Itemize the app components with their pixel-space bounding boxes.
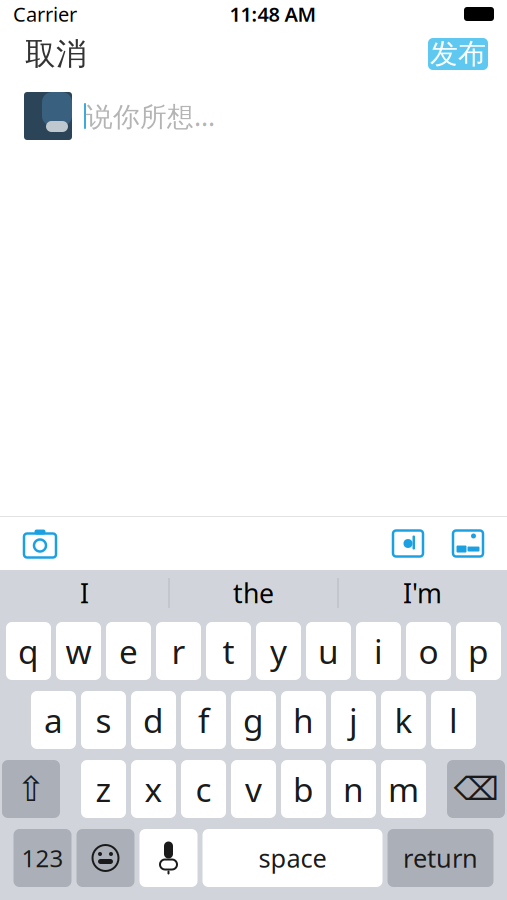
staticText: u: [318, 629, 339, 673]
staticText: 123: [21, 842, 63, 874]
button[interactable]: n: [331, 760, 376, 818]
button[interactable]: k: [381, 691, 426, 749]
button[interactable]: e: [106, 622, 151, 680]
button[interactable]: Shift: [2, 760, 60, 818]
staticText: p: [468, 629, 489, 673]
button[interactable]: w: [56, 622, 101, 680]
button[interactable]: m: [381, 760, 426, 818]
button[interactable]: t: [206, 622, 251, 680]
staticText: t: [222, 629, 234, 673]
staticText: r: [171, 629, 185, 673]
staticText: b: [293, 767, 314, 811]
button[interactable]: u: [306, 622, 351, 680]
staticText: 取消: [25, 35, 87, 73]
staticText: h: [293, 698, 314, 742]
staticText: o: [418, 629, 438, 673]
button[interactable]: g: [231, 691, 276, 749]
button[interactable]: z: [81, 760, 126, 818]
staticText: j: [349, 698, 358, 742]
button[interactable]: c: [181, 760, 226, 818]
button[interactable]: o: [406, 622, 451, 680]
button[interactable]: I: [0, 571, 168, 615]
staticText: v: [245, 767, 262, 811]
staticText: 说你所想...: [86, 98, 215, 134]
staticText: c: [195, 767, 211, 811]
button[interactable]: I'm: [338, 571, 506, 615]
staticText: m: [388, 767, 419, 811]
staticText: n: [343, 767, 364, 811]
staticText: 11:48 AM: [229, 1, 316, 27]
button[interactable]: space: [202, 829, 382, 887]
button[interactable]: l: [431, 691, 476, 749]
button[interactable]: a: [31, 691, 76, 749]
button[interactable]: x: [131, 760, 176, 818]
button[interactable]: 取消: [19, 29, 93, 79]
button[interactable]: Camera: [23, 528, 57, 558]
staticText: return: [403, 841, 478, 875]
button[interactable]: Emoji: [76, 829, 134, 887]
staticText: x: [144, 767, 162, 811]
button[interactable]: s: [81, 691, 126, 749]
button[interactable]: q: [6, 622, 51, 680]
staticText: l: [449, 698, 458, 742]
staticText: the: [233, 575, 274, 611]
button[interactable]: 发布: [428, 38, 488, 70]
button[interactable]: f: [181, 691, 226, 749]
staticText: 发布: [430, 37, 486, 71]
staticText: space: [258, 841, 326, 875]
staticText: q: [18, 629, 39, 673]
button[interactable]: p: [456, 622, 501, 680]
button[interactable]: d: [131, 691, 176, 749]
button[interactable]: v: [231, 760, 276, 818]
staticText: ⇧: [16, 769, 45, 809]
button[interactable]: y: [256, 622, 301, 680]
button[interactable]: Delete: [447, 760, 505, 818]
button[interactable]: return: [387, 829, 493, 887]
staticText: i: [374, 629, 383, 673]
button[interactable]: j: [331, 691, 376, 749]
staticText: ⌫: [453, 771, 498, 807]
staticText: e: [119, 629, 138, 673]
button[interactable]: Dictation: [139, 829, 197, 887]
staticText: w: [65, 629, 91, 673]
staticText: s: [95, 698, 111, 742]
staticText: k: [394, 698, 412, 742]
staticText: Carrier: [13, 1, 77, 27]
button[interactable]: Photos: [452, 529, 484, 557]
button[interactable]: i: [356, 622, 401, 680]
staticText: I: [80, 575, 89, 611]
staticText: d: [143, 698, 164, 742]
staticText: y: [270, 629, 287, 673]
staticText: z: [95, 767, 111, 811]
staticText: a: [44, 698, 63, 742]
staticText: f: [198, 698, 209, 742]
button[interactable]: r: [156, 622, 201, 680]
staticText: g: [243, 698, 264, 742]
staticText: I'm: [403, 575, 442, 611]
button[interactable]: 123: [13, 829, 71, 887]
button[interactable]: the: [169, 571, 337, 615]
button[interactable]: h: [281, 691, 326, 749]
button[interactable]: b: [281, 760, 326, 818]
button[interactable]: Music: [392, 529, 424, 557]
